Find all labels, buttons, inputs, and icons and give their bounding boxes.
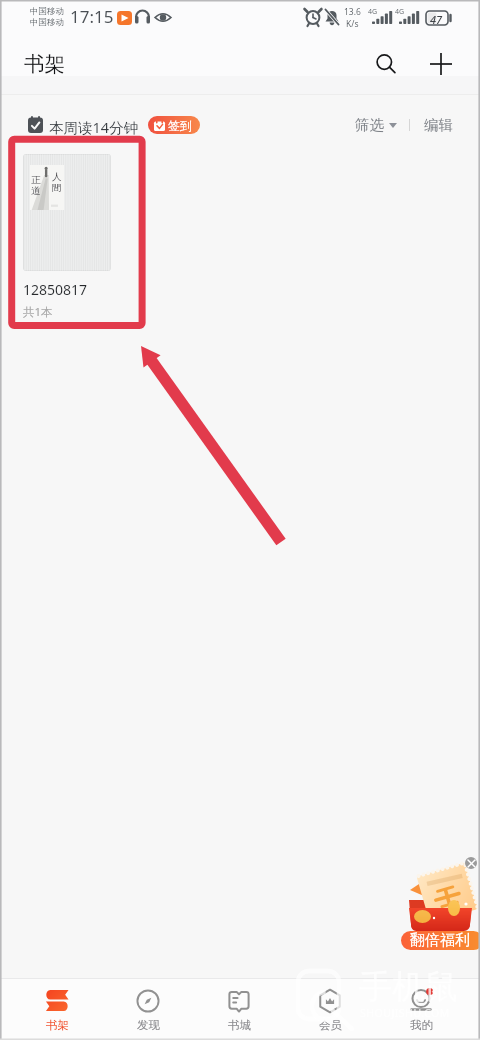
staticText: 手机鼠 [359, 966, 458, 1008]
staticText: 間 [52, 182, 62, 194]
button[interactable]: 搜索 [366, 44, 406, 84]
staticText: SHOUJISHU.COM [360, 1006, 450, 1020]
staticText: 12850817 [23, 280, 88, 299]
staticText: 47 [430, 12, 443, 27]
staticText: 本周读14分钟 [49, 117, 139, 137]
staticText: 中国移动 [30, 6, 64, 17]
staticText: 书城 [228, 1018, 251, 1032]
staticText: 编辑 [424, 116, 453, 134]
staticText: 13.6 [344, 6, 361, 18]
button[interactable]: 添加 [421, 44, 461, 84]
button[interactable]: 关闭 [465, 857, 477, 869]
staticText: 17:15 [70, 5, 114, 28]
staticText: 书架 [24, 51, 65, 77]
button[interactable]: 翻倍福利 [398, 852, 480, 954]
staticText: 签到 [168, 118, 192, 133]
button[interactable]: 筛选 [355, 116, 397, 134]
staticText: 书架 [46, 1018, 69, 1032]
button[interactable]: 我的 [391, 979, 451, 1040]
button[interactable]: 正 [23, 154, 111, 320]
staticText: 正 [31, 174, 41, 186]
button[interactable]: 翻倍福利 [401, 931, 480, 950]
staticText: 道 [31, 185, 41, 197]
staticText: 发现 [137, 1018, 160, 1032]
button[interactable]: 发现 [118, 979, 178, 1040]
staticText: 筛选 [355, 116, 384, 134]
staticText: 4G [368, 7, 378, 17]
staticText: 我的 [410, 1018, 433, 1032]
staticText: 共1本 [23, 304, 53, 320]
staticText: 中国移动 [30, 17, 64, 28]
button[interactable]: 书城 [209, 979, 269, 1040]
staticText: 4G [395, 7, 405, 17]
staticText: 人 [52, 171, 62, 183]
button[interactable]: 书架 [27, 979, 87, 1040]
staticText: 翻倍福利 [410, 931, 470, 950]
button[interactable]: 会员 [300, 979, 360, 1040]
staticText: K/s [346, 18, 359, 30]
button[interactable]: 编辑 [424, 116, 453, 134]
staticText: 会员 [319, 1018, 342, 1032]
button[interactable]: 签到 [148, 116, 200, 134]
